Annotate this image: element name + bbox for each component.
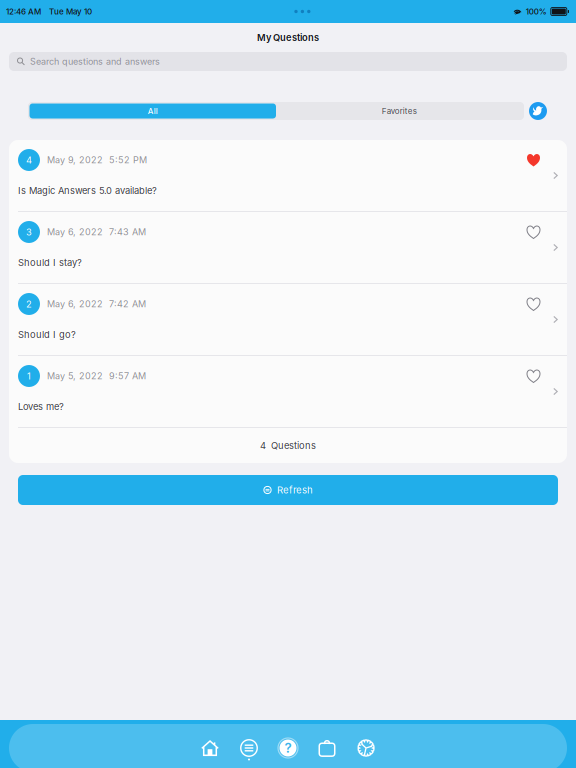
staticText: May 5, 2022 xyxy=(47,370,103,381)
staticText: Tue May 10 xyxy=(49,7,92,16)
staticText: 7:43 AM xyxy=(109,226,146,237)
staticText: 4 xyxy=(260,440,266,451)
staticText: Questions xyxy=(271,440,316,451)
staticText: 4 xyxy=(26,154,32,166)
staticText: May 9, 2022 xyxy=(47,154,103,165)
staticText: Should I stay? xyxy=(18,257,82,268)
staticText: 9:57 AM xyxy=(109,370,146,381)
staticText: My Questions xyxy=(257,32,319,43)
staticText: Loves me? xyxy=(18,401,64,412)
button[interactable]: 4 xyxy=(9,140,567,211)
staticText: 1 xyxy=(27,370,31,382)
staticText: All xyxy=(148,106,158,116)
button[interactable]: 2 xyxy=(9,284,567,355)
button[interactable]: Settings xyxy=(346,730,385,766)
button[interactable]: Home xyxy=(190,730,229,766)
staticText: 7:42 AM xyxy=(109,298,146,309)
button[interactable]: Topics xyxy=(229,730,268,766)
button[interactable]: My Questions xyxy=(268,730,307,766)
staticText: 5:52 PM xyxy=(109,154,147,165)
staticText: 12:46 AM xyxy=(6,7,41,16)
button[interactable]: All xyxy=(29,103,276,118)
staticText: Refresh xyxy=(277,484,313,496)
button[interactable]: Search questions and answers xyxy=(0,52,576,71)
staticText: May 6, 2022 xyxy=(47,226,103,237)
staticText: 2 xyxy=(26,298,32,310)
staticText: 100% xyxy=(526,7,547,16)
button[interactable]: Refresh xyxy=(0,475,576,505)
staticText: Favorites xyxy=(382,106,417,116)
button[interactable]: 1 xyxy=(9,356,567,427)
staticText: Is Magic Answers 5.0 available? xyxy=(18,185,157,196)
button[interactable]: 3 xyxy=(9,212,567,283)
button[interactable]: Favorites xyxy=(276,103,522,118)
staticText: Should I go? xyxy=(18,329,76,340)
button[interactable]: Twitter xyxy=(529,102,547,120)
button[interactable]: Store xyxy=(307,730,346,766)
staticText: Search questions and answers xyxy=(30,56,160,67)
staticText: May 6, 2022 xyxy=(47,298,103,309)
staticText: ? xyxy=(284,740,291,756)
staticText: 3 xyxy=(26,226,32,238)
